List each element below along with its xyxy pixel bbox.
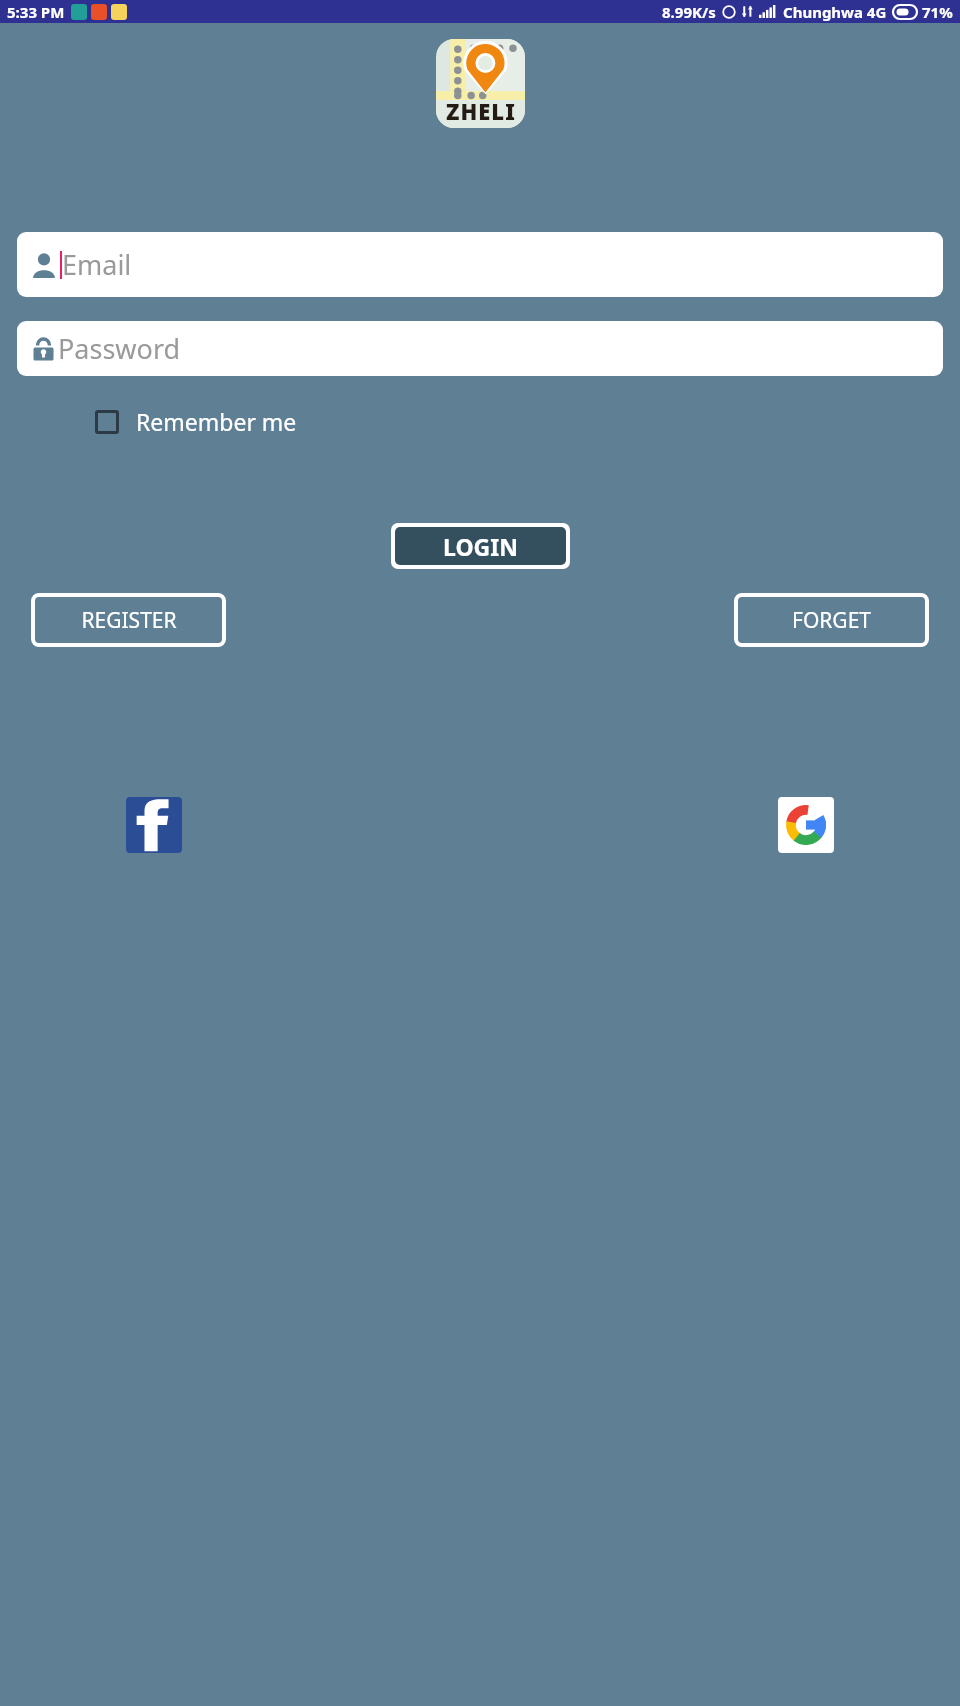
- staticText: 71%: [922, 2, 953, 22]
- staticText: FORGET PASSWORD?: [738, 606, 925, 635]
- staticText: LOGIN: [443, 531, 518, 562]
- button[interactable]: LOGIN: [395, 527, 566, 565]
- button[interactable]: Sign in with Facebook: [126, 797, 182, 853]
- staticText: Remember me: [136, 406, 297, 437]
- button[interactable]: REGISTER: [31, 593, 226, 647]
- button[interactable]: FORGET PASSWORD?: [734, 593, 929, 647]
- button[interactable]: Password: [17, 321, 943, 376]
- staticText: Email: [62, 246, 132, 283]
- staticText: 5:33 PM: [7, 2, 65, 22]
- button[interactable]: Email: [17, 232, 943, 297]
- staticText: 8.99K/s: [662, 2, 716, 22]
- button[interactable]: Sign in with Google: [778, 797, 834, 853]
- staticText: ZHELI: [446, 96, 516, 126]
- staticText: Chunghwa 4G: [783, 2, 887, 22]
- staticText: REGISTER: [81, 606, 177, 635]
- staticText: Password: [58, 330, 181, 367]
- button[interactable]: Remember me: [95, 406, 297, 437]
